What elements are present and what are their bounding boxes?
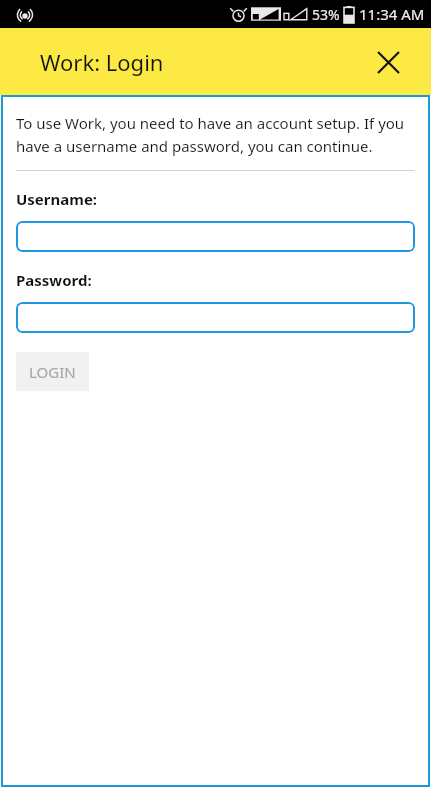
button[interactable]: LOGIN (16, 352, 89, 391)
staticText: Password: (16, 270, 92, 290)
button[interactable]: Close (371, 45, 405, 79)
staticText: To use Work, you need to have an account… (16, 113, 415, 156)
staticText: 11:34 AM (359, 4, 425, 24)
staticText: Work: Login (40, 47, 164, 77)
button[interactable]: Text input (16, 302, 415, 333)
staticText: Username: (16, 189, 98, 209)
staticText: LOGIN (29, 362, 76, 382)
staticText: 53% (312, 5, 340, 24)
button[interactable]: Text input (16, 221, 415, 252)
